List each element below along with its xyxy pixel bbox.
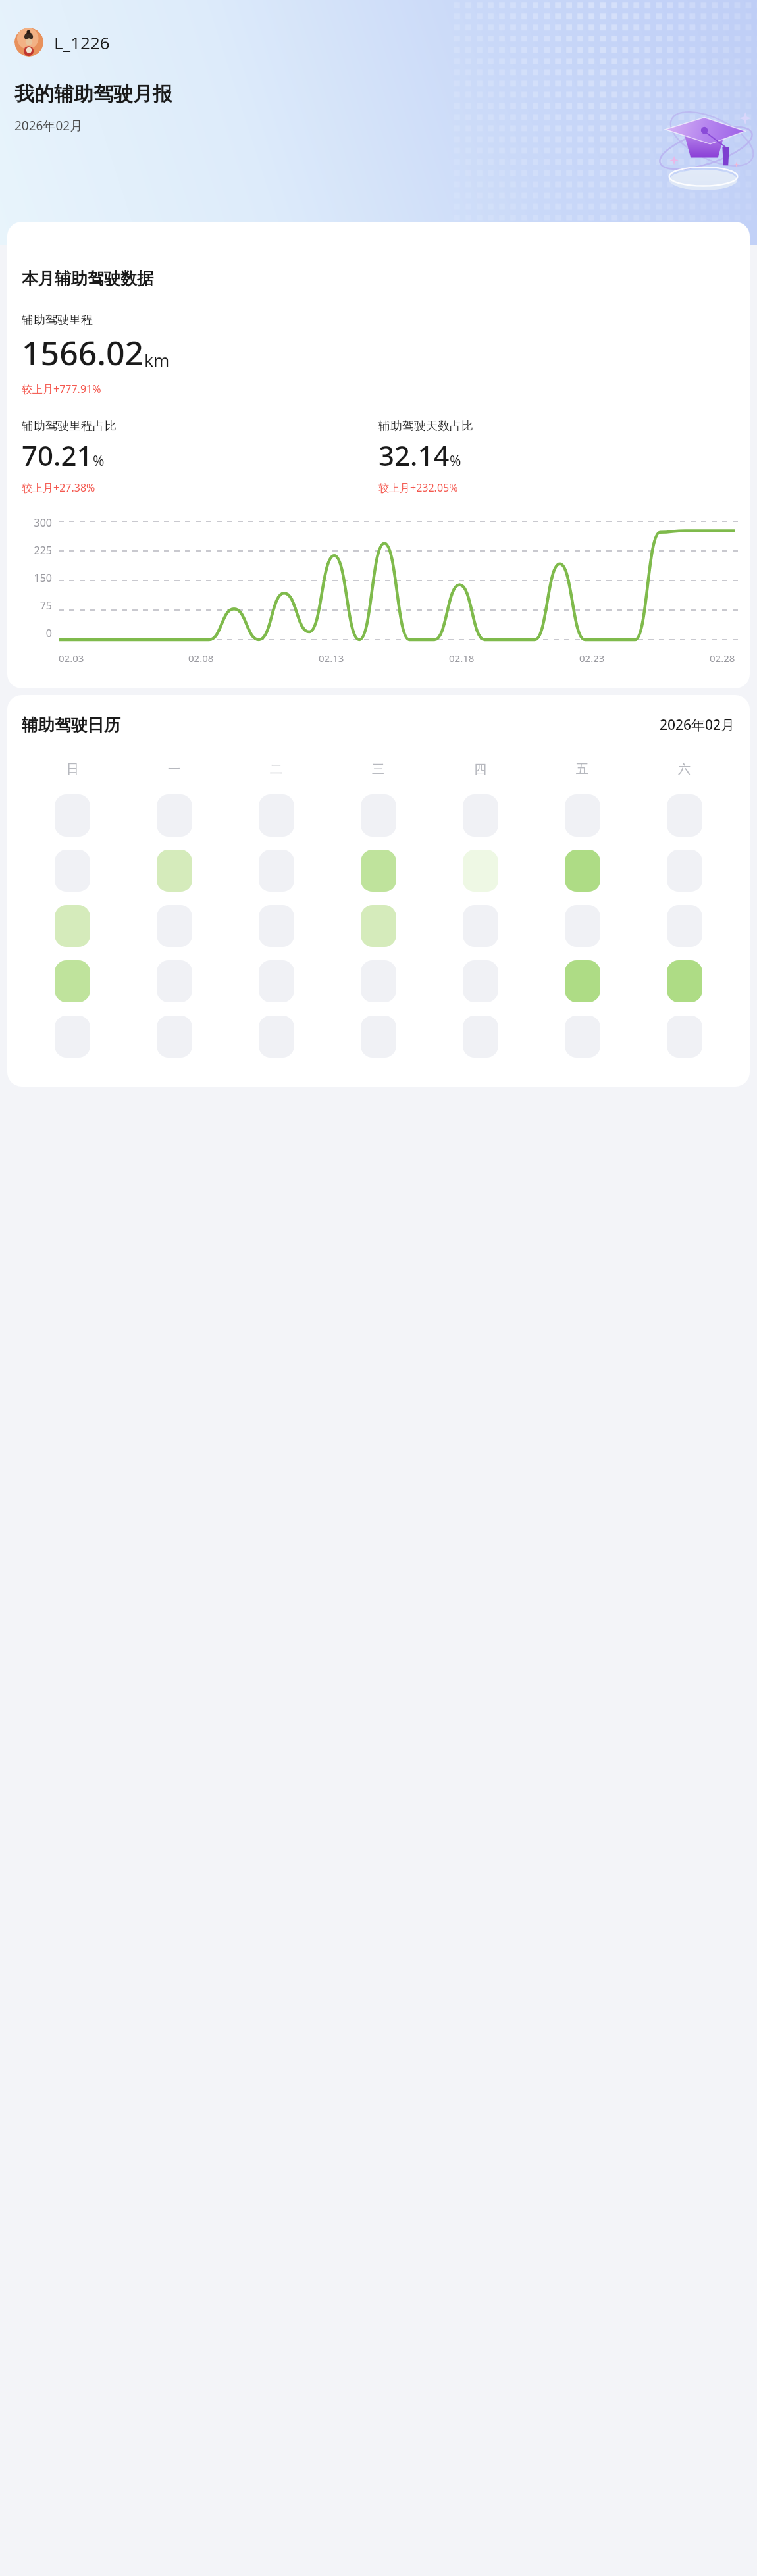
button[interactable] xyxy=(361,1016,396,1058)
staticText: 较上月+27.38% xyxy=(22,480,95,495)
staticText: 较上月+777.91% xyxy=(22,382,101,396)
staticText: 02.08 xyxy=(188,652,214,665)
button[interactable]: 本月辅助驾驶数据 xyxy=(7,251,750,688)
staticText: 150 xyxy=(34,571,52,585)
button[interactable] xyxy=(157,850,192,892)
staticText: 赛博驾校名 xyxy=(22,252,153,285)
staticText: 2026年02月 xyxy=(14,117,83,134)
button[interactable] xyxy=(259,960,294,1002)
staticText: 辅助驾驶日历 xyxy=(22,715,120,735)
button[interactable] xyxy=(565,850,600,892)
staticText: 我的辅助驾驶月报 xyxy=(14,82,172,107)
staticText: 02.18 xyxy=(449,652,475,665)
button[interactable] xyxy=(55,905,90,947)
button[interactable] xyxy=(55,960,90,1002)
button[interactable] xyxy=(463,905,498,947)
button[interactable] xyxy=(157,1016,192,1058)
button[interactable] xyxy=(565,960,600,1002)
staticText: 四 xyxy=(474,761,486,777)
button[interactable] xyxy=(565,905,600,947)
staticText: 1566.02 xyxy=(22,330,144,375)
staticText: % xyxy=(450,451,461,471)
button[interactable] xyxy=(361,960,396,1002)
button[interactable]: 辅助驾驶日历 xyxy=(7,695,750,1087)
staticText: 誉校长 xyxy=(22,288,101,321)
button[interactable] xyxy=(361,905,396,947)
staticText: 02.23 xyxy=(579,652,605,665)
button[interactable] xyxy=(463,1016,498,1058)
button[interactable] xyxy=(463,794,498,837)
button[interactable] xyxy=(157,960,192,1002)
button[interactable] xyxy=(361,850,396,892)
staticText: 225 xyxy=(34,543,52,557)
staticText: 32.14 xyxy=(378,436,450,474)
staticText: 本月数据表现 xyxy=(35,382,102,396)
staticText: 02.03 xyxy=(59,652,84,665)
staticText: 70.21 xyxy=(22,436,93,474)
staticText: L_1226 xyxy=(54,31,110,54)
button[interactable] xyxy=(463,850,498,892)
staticText: 日 xyxy=(66,761,79,777)
staticText: 辅助驾驶天数占比 xyxy=(378,419,473,434)
button[interactable] xyxy=(55,850,90,892)
button[interactable] xyxy=(667,1016,702,1058)
button[interactable] xyxy=(157,905,192,947)
staticText: 0 xyxy=(45,626,52,640)
button[interactable] xyxy=(667,794,702,837)
staticText: 较上月+232.05% xyxy=(378,480,458,495)
button[interactable] xyxy=(259,794,294,837)
button[interactable] xyxy=(565,794,600,837)
button[interactable] xyxy=(55,794,90,837)
staticText: 300 xyxy=(34,515,52,530)
button[interactable]: L_1226 xyxy=(14,28,110,57)
staticText: 二 xyxy=(270,761,282,777)
button[interactable] xyxy=(667,960,702,1002)
button[interactable] xyxy=(157,794,192,837)
staticText: 使用NGP里程极多，在总车辆里程里占比也极高 xyxy=(35,406,271,421)
staticText: % xyxy=(93,451,105,471)
staticText: 辅助驾驶里程占比 xyxy=(22,419,117,434)
button[interactable] xyxy=(565,1016,600,1058)
button[interactable] xyxy=(55,1016,90,1058)
button[interactable] xyxy=(463,960,498,1002)
button[interactable]: 赛博驾校名 xyxy=(7,222,750,454)
button[interactable] xyxy=(361,794,396,837)
staticText: 02.13 xyxy=(319,652,344,665)
staticText: 一 xyxy=(168,761,180,777)
button[interactable] xyxy=(259,1016,294,1058)
staticText: 02.28 xyxy=(710,652,735,665)
staticText: 你已经把辅助驾驶教成「赛博优等生」,连变道超车都带着优雅的AI式傲慢 xyxy=(22,335,404,351)
staticText: 本月辅助驾驶数据 xyxy=(22,269,153,289)
staticText: km xyxy=(144,348,170,371)
button[interactable] xyxy=(259,850,294,892)
staticText: 2026年02月 xyxy=(660,715,735,734)
staticText: 五 xyxy=(576,761,588,777)
button[interactable] xyxy=(667,850,702,892)
button[interactable] xyxy=(259,905,294,947)
staticText: 六 xyxy=(678,761,691,777)
button[interactable] xyxy=(667,905,702,947)
staticText: 三 xyxy=(372,761,384,777)
staticText: 辅助驾驶里程 xyxy=(22,313,93,328)
staticText: 75 xyxy=(39,598,52,613)
